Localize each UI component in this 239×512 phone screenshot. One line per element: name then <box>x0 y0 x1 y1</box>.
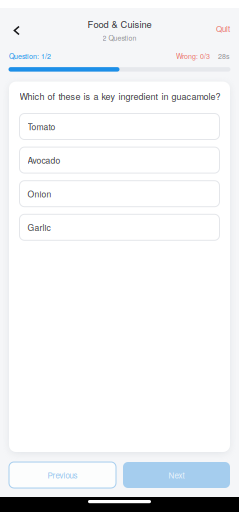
button[interactable]: Quit <box>206 19 239 40</box>
staticText: Question: 1/2 <box>9 51 51 61</box>
staticText: Avocado <box>27 154 60 166</box>
staticText: Onion <box>27 188 51 200</box>
button[interactable]: Garlic <box>19 214 219 240</box>
button[interactable]: Next <box>123 462 230 488</box>
button[interactable]: Avocado <box>19 147 219 173</box>
staticText: Garlic <box>27 221 50 233</box>
staticText: Wrong: 0/3 <box>176 51 210 61</box>
button[interactable]: Tomato <box>19 113 219 139</box>
staticText: Which of these is a key ingredient in gu… <box>19 90 220 102</box>
button[interactable]: Onion <box>19 181 219 207</box>
staticText: Food & Cuisine <box>87 17 151 31</box>
staticText: 28s <box>218 51 230 61</box>
staticText: Quit <box>216 23 230 34</box>
staticText: Next <box>168 469 184 481</box>
button[interactable]: Back <box>0 20 30 39</box>
staticText: Tomato <box>27 120 55 133</box>
staticText: 2 Question <box>102 33 136 43</box>
staticText: Previous <box>47 469 77 481</box>
button[interactable]: Previous <box>9 462 116 488</box>
